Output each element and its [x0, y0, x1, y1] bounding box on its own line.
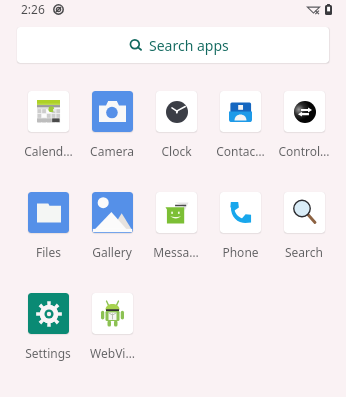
staticText: Files — [36, 244, 61, 260]
button[interactable]: Settings — [16, 293, 80, 361]
button[interactable]: Messa… — [144, 192, 208, 260]
button[interactable]: Calend… — [16, 91, 80, 159]
staticText: Clock — [161, 143, 192, 159]
button[interactable]: Gallery — [80, 192, 144, 260]
button[interactable]: WebVi… — [80, 293, 144, 361]
button[interactable]: Phone — [208, 192, 272, 260]
staticText: Camera — [90, 143, 134, 159]
staticText: Calend… — [24, 143, 73, 159]
button[interactable]: Search — [272, 192, 336, 260]
button[interactable]: Clock — [144, 91, 208, 159]
button[interactable]: Control… — [272, 91, 336, 159]
staticText: 2:26 — [21, 1, 45, 17]
staticText: Messa… — [153, 244, 199, 260]
staticText: Settings — [25, 345, 71, 361]
staticText: Search apps — [149, 36, 229, 55]
button[interactable]: Camera — [80, 91, 144, 159]
staticText: Control… — [278, 143, 330, 159]
staticText: WebVi… — [90, 345, 135, 361]
button[interactable]: Contac… — [208, 91, 272, 159]
staticText: Search — [285, 244, 323, 260]
button[interactable]: Files — [16, 192, 80, 260]
staticText: Gallery — [92, 244, 132, 260]
button[interactable]: Search apps — [17, 27, 329, 63]
staticText: Contac… — [216, 143, 265, 159]
staticText: Phone — [222, 244, 259, 260]
